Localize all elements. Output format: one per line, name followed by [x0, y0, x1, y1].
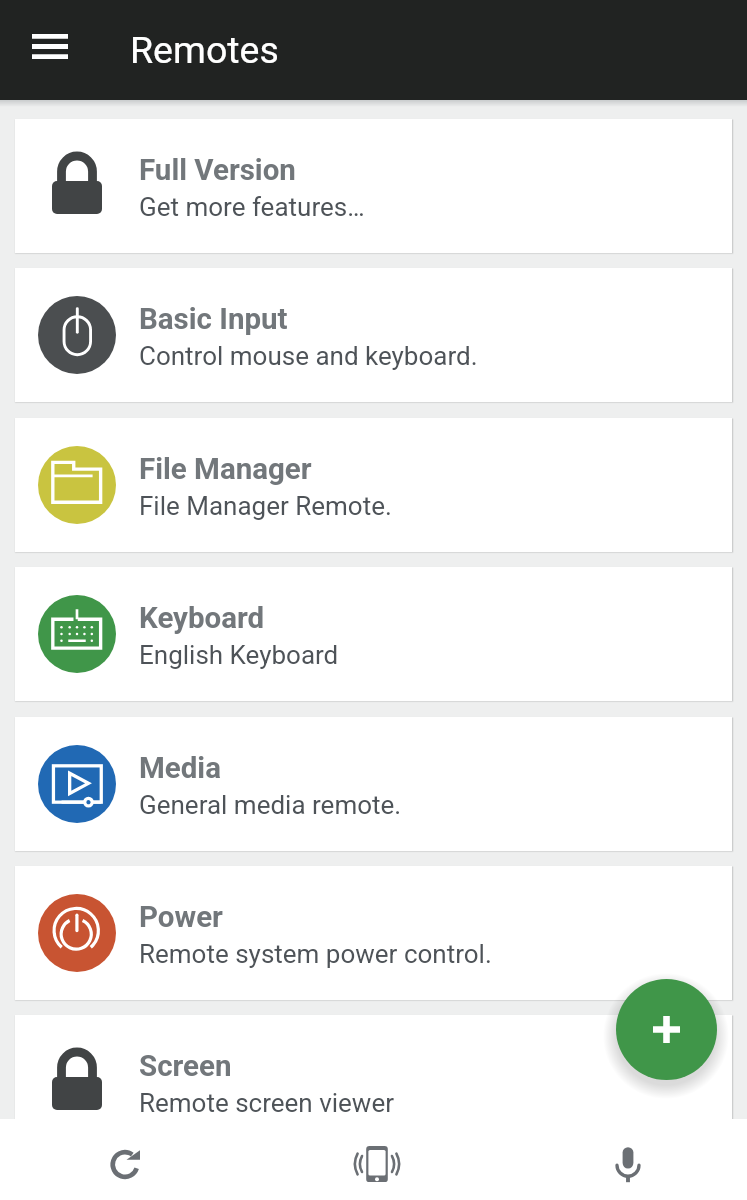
staticText: Get more features… — [139, 192, 365, 222]
staticText: Remote system power control. — [139, 939, 492, 969]
staticText: Power — [139, 900, 223, 935]
button[interactable]: Media — [15, 717, 732, 851]
staticText: File Manager — [139, 452, 312, 487]
button[interactable]: Full Version — [15, 119, 732, 253]
button[interactable]: Add remote — [616, 979, 717, 1080]
staticText: Control mouse and keyboard. — [139, 341, 478, 371]
staticText: Remote screen viewer — [139, 1088, 394, 1118]
staticText: Basic Input — [139, 302, 288, 337]
staticText: General media remote. — [139, 790, 402, 820]
button[interactable]: Screen — [15, 1015, 732, 1149]
button[interactable]: Refresh — [0, 1119, 249, 1200]
staticText: File Manager Remote. — [139, 491, 392, 521]
button[interactable]: Open navigation menu — [0, 0, 100, 100]
staticText: English Keyboard — [139, 640, 339, 670]
staticText: Media — [139, 751, 221, 786]
button[interactable]: Voice input — [498, 1119, 747, 1200]
button[interactable]: File Manager — [15, 418, 732, 552]
staticText: Remotes — [130, 28, 279, 72]
staticText: Full Version — [139, 153, 296, 188]
button[interactable]: Basic Input — [15, 268, 732, 402]
button[interactable]: Power — [15, 866, 732, 1000]
button[interactable]: Keyboard — [15, 567, 732, 701]
staticText: Keyboard — [139, 601, 265, 636]
staticText: Screen — [139, 1049, 232, 1084]
button[interactable]: Find device — [249, 1119, 498, 1200]
